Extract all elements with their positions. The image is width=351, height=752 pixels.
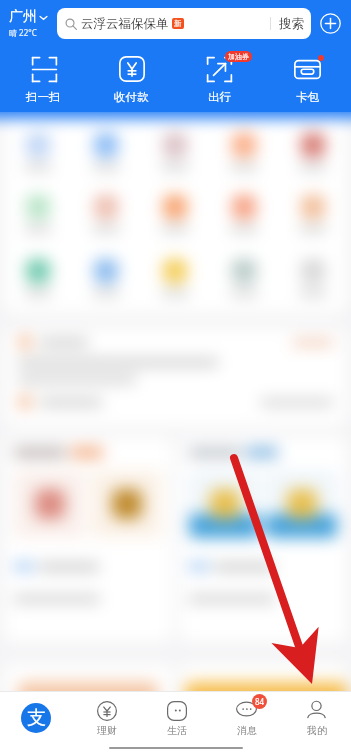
button[interactable]: 卡包 [263,46,351,112]
button[interactable]: 生活 [141,692,211,744]
button[interactable]: 我的 [281,692,351,744]
button[interactable]: 84 [211,692,281,744]
button[interactable]: 加油券 [175,46,263,112]
staticText: 支 [27,706,46,730]
staticText: 出行 [208,90,231,104]
button[interactable]: Add [320,13,341,34]
staticText: 我的 [307,724,327,737]
staticText: 搜索 [279,16,304,32]
staticText: 84 [255,696,265,707]
staticText: 广州 [9,8,37,26]
staticText: 卡包 [296,90,319,104]
staticText: 加油券 [228,52,249,61]
staticText: 理财 [97,724,117,737]
button[interactable]: 扫一扫 [0,46,87,112]
staticText: 晴 22°C [9,27,37,38]
staticText: 收付款 [114,90,149,104]
staticText: 生活 [167,724,187,737]
staticText: 云浮云福保保单 [81,16,169,32]
button[interactable]: 理财 [71,692,141,744]
button[interactable]: 收付款 [87,46,175,112]
button[interactable]: 广州 [6,6,51,40]
staticText: 扫一扫 [26,90,61,104]
staticText: 新 [174,19,182,28]
staticText: 消息 [237,724,257,737]
button[interactable]: 云浮云福保保单 [57,8,311,39]
button[interactable]: 支 [0,692,71,744]
